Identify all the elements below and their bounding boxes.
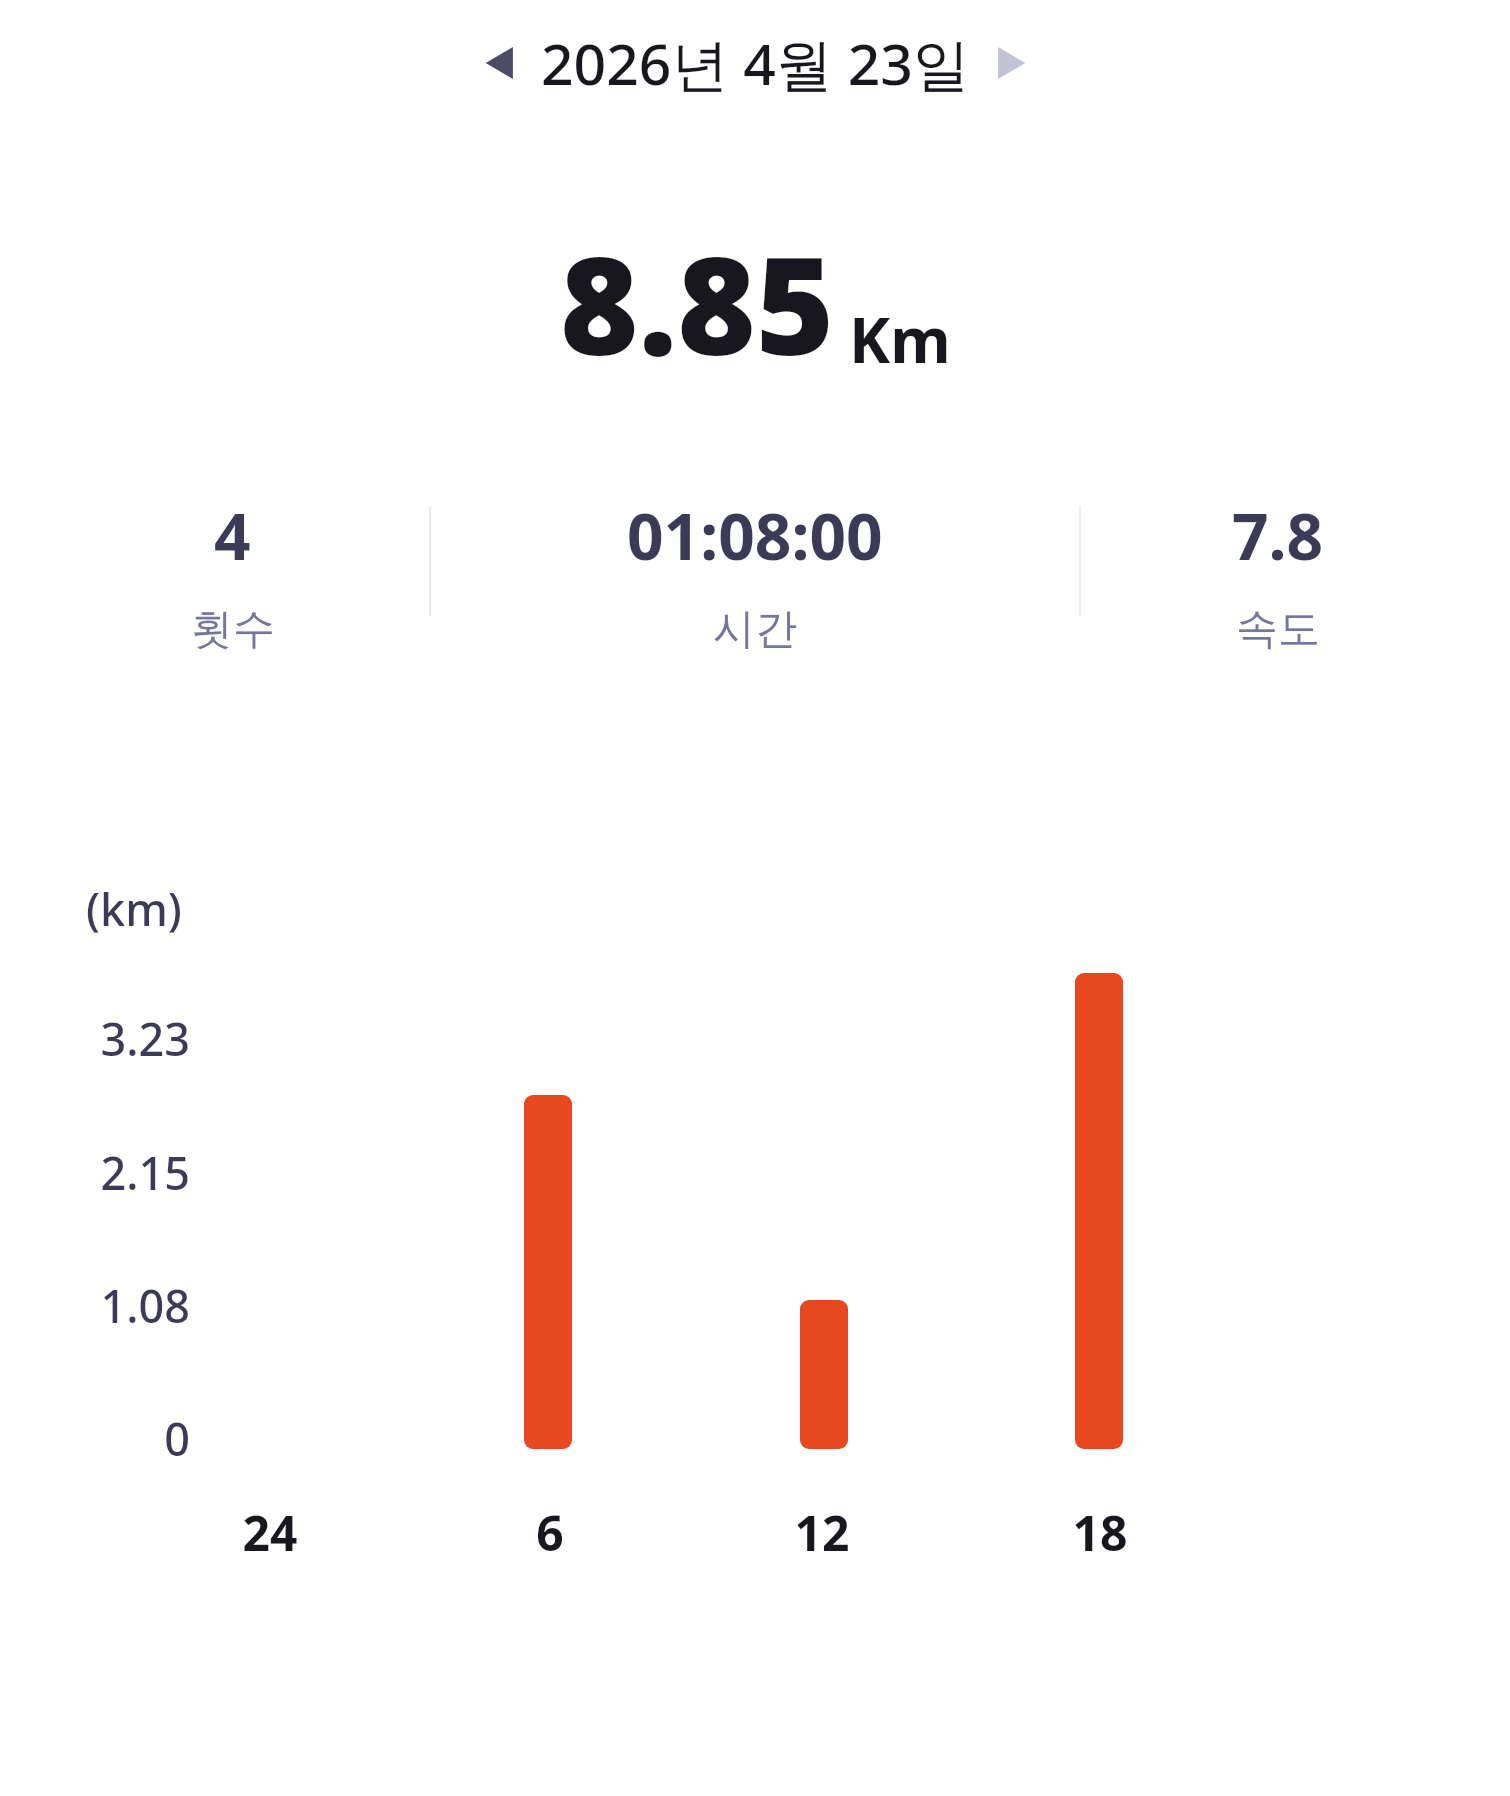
staticText: 18 [990,1500,1210,1565]
button[interactable]: Previous day [471,33,531,93]
button[interactable]: Next day [980,33,1040,93]
button[interactable]: Distance bar [524,1095,572,1449]
staticText: 01:08:00 [627,492,883,579]
staticText: 2026년 4월 23일 [541,24,970,102]
staticText: 8.85 [560,212,835,395]
button[interactable]: Distance bar [1075,973,1123,1449]
staticText: 횟수 [191,603,275,656]
staticText: 24 [160,1500,380,1565]
button[interactable]: 4 [36,492,429,656]
button[interactable]: Distance bar [800,1300,848,1449]
staticText: 1.08 [0,1275,190,1336]
staticText: 3.23 [0,1008,190,1069]
staticText: 2.15 [0,1142,190,1203]
staticText: 6 [440,1500,660,1565]
staticText: Km [849,297,951,381]
staticText: 4 [214,492,251,579]
staticText: 시간 [713,603,797,656]
staticText: (km) [86,878,182,939]
button[interactable]: 01:08:00 [431,492,1079,656]
staticText: 12 [712,1500,932,1565]
staticText: 속도 [1236,603,1320,656]
button[interactable]: 7.8 [1081,492,1474,656]
staticText: 7.8 [1232,492,1324,579]
staticText: 0 [0,1408,190,1469]
